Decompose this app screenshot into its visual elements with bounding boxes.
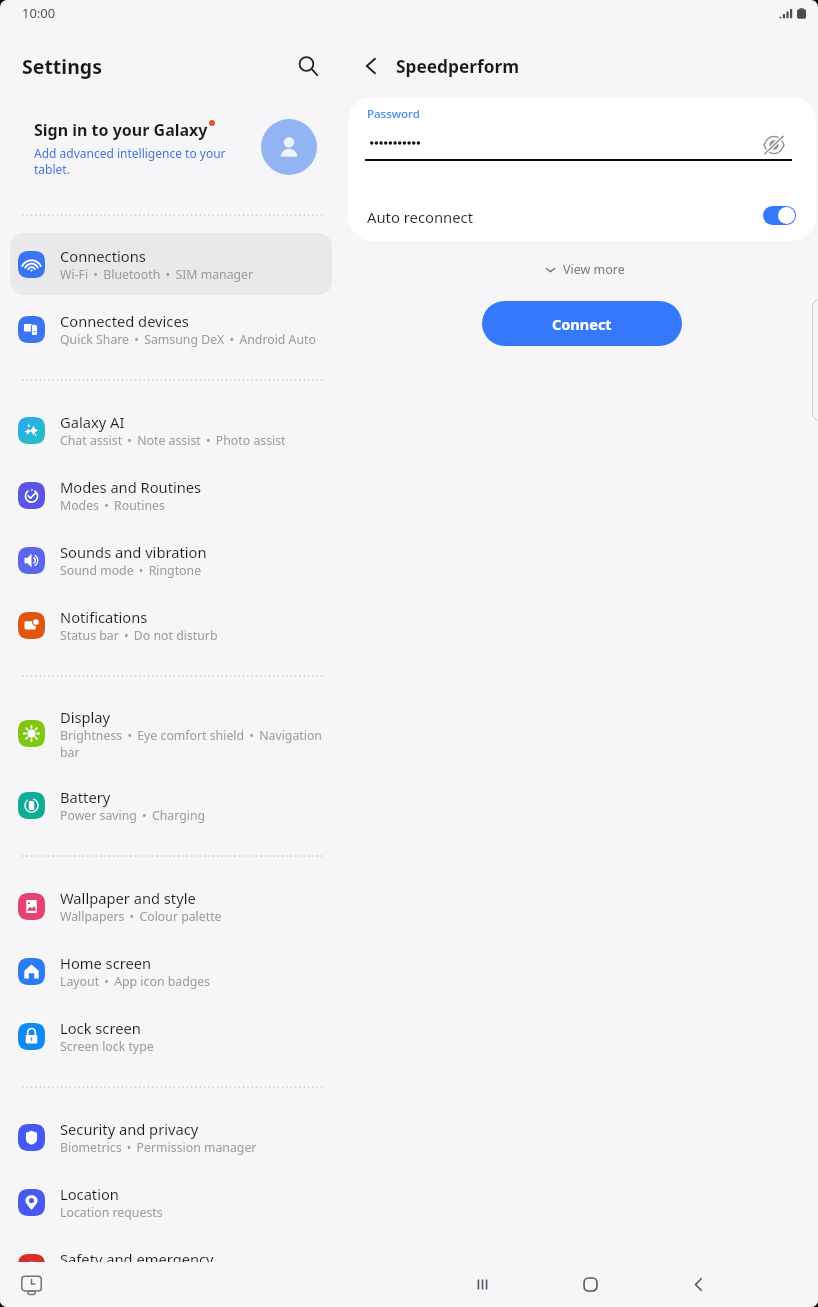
- staticText: Biometrics • Permission manager: [60, 1139, 257, 1156]
- button[interactable]: Modes and Routines: [10, 464, 332, 526]
- staticText: Status bar • Do not disturb: [60, 627, 218, 644]
- button[interactable]: Security and privacy: [10, 1106, 332, 1168]
- button[interactable]: View more: [350, 257, 818, 281]
- button[interactable]: Display: [10, 695, 332, 771]
- staticText: Power saving • Charging: [60, 807, 206, 824]
- button[interactable]: Home: [567, 1262, 613, 1307]
- staticText: Screen lock type: [60, 1038, 154, 1055]
- button[interactable]: Show password: [758, 129, 790, 161]
- staticText: Safety and emergency: [60, 1249, 214, 1269]
- staticText: Auto reconnect: [367, 207, 474, 227]
- staticText: Wallpaper and style: [60, 888, 196, 908]
- staticText: Add advanced intelligence to your tablet…: [34, 145, 226, 177]
- staticText: Sign in to your Galaxy: [34, 119, 208, 141]
- staticText: Connections: [60, 246, 146, 266]
- button[interactable]: Back: [354, 49, 388, 83]
- staticText: Brightness • Eye comfort shield • Naviga…: [60, 727, 322, 760]
- staticText: Connect: [552, 314, 612, 334]
- button[interactable]: Battery: [10, 774, 332, 836]
- staticText: Lock screen: [60, 1018, 141, 1038]
- button[interactable]: Sign in to your Galaxy: [0, 102, 345, 214]
- button[interactable]: Wallpaper and style: [10, 875, 332, 937]
- staticText: Modes • Routines: [60, 497, 165, 514]
- staticText: View more: [563, 261, 625, 278]
- button[interactable]: Search: [291, 49, 325, 83]
- staticText: Wallpapers • Colour palette: [60, 908, 222, 925]
- button[interactable]: Notifications: [10, 594, 332, 656]
- staticText: Chat assist • Note assist • Photo assist: [60, 432, 286, 449]
- button[interactable]: Galaxy AI: [10, 399, 332, 461]
- button[interactable]: Lock screen: [10, 1005, 332, 1067]
- staticText: Sound mode • Ringtone: [60, 562, 202, 579]
- staticText: Galaxy AI: [60, 412, 125, 432]
- button[interactable]: Screen timeout: [15, 1269, 47, 1301]
- button[interactable]: Safety and emergency: [10, 1236, 332, 1298]
- staticText: Home screen: [60, 953, 152, 973]
- staticText: Location: [60, 1184, 119, 1204]
- button[interactable]: Recents: [459, 1262, 505, 1307]
- staticText: Security and privacy: [60, 1119, 199, 1139]
- staticText: Wi-Fi • Bluetooth • SIM manager: [60, 266, 254, 283]
- staticText: Location requests: [60, 1204, 163, 1221]
- staticText: Sounds and vibration: [60, 542, 207, 562]
- button[interactable]: Edge panel: [812, 299, 818, 421]
- button[interactable]: Auto reconnect toggle: [763, 206, 796, 225]
- staticText: Battery: [60, 787, 111, 807]
- button[interactable]: Home screen: [10, 940, 332, 1002]
- staticText: Layout • App icon badges: [60, 973, 211, 990]
- staticText: Speedperform: [396, 55, 520, 79]
- button[interactable]: Connect: [482, 301, 682, 346]
- button[interactable]: Sounds and vibration: [10, 529, 332, 591]
- staticText: 10:00: [22, 4, 56, 22]
- staticText: Notifications: [60, 607, 148, 627]
- staticText: Connected devices: [60, 311, 189, 331]
- staticText: Modes and Routines: [60, 477, 202, 497]
- staticText: Password: [367, 106, 420, 122]
- button[interactable]: Back: [675, 1262, 721, 1307]
- staticText: Settings: [22, 53, 102, 80]
- button[interactable]: Location: [10, 1171, 332, 1233]
- staticText: Quick Share • Samsung DeX • Android Auto: [60, 331, 316, 348]
- button[interactable]: Connections: [10, 233, 332, 295]
- staticText: Display: [60, 707, 111, 727]
- button[interactable]: Connected devices: [10, 298, 332, 360]
